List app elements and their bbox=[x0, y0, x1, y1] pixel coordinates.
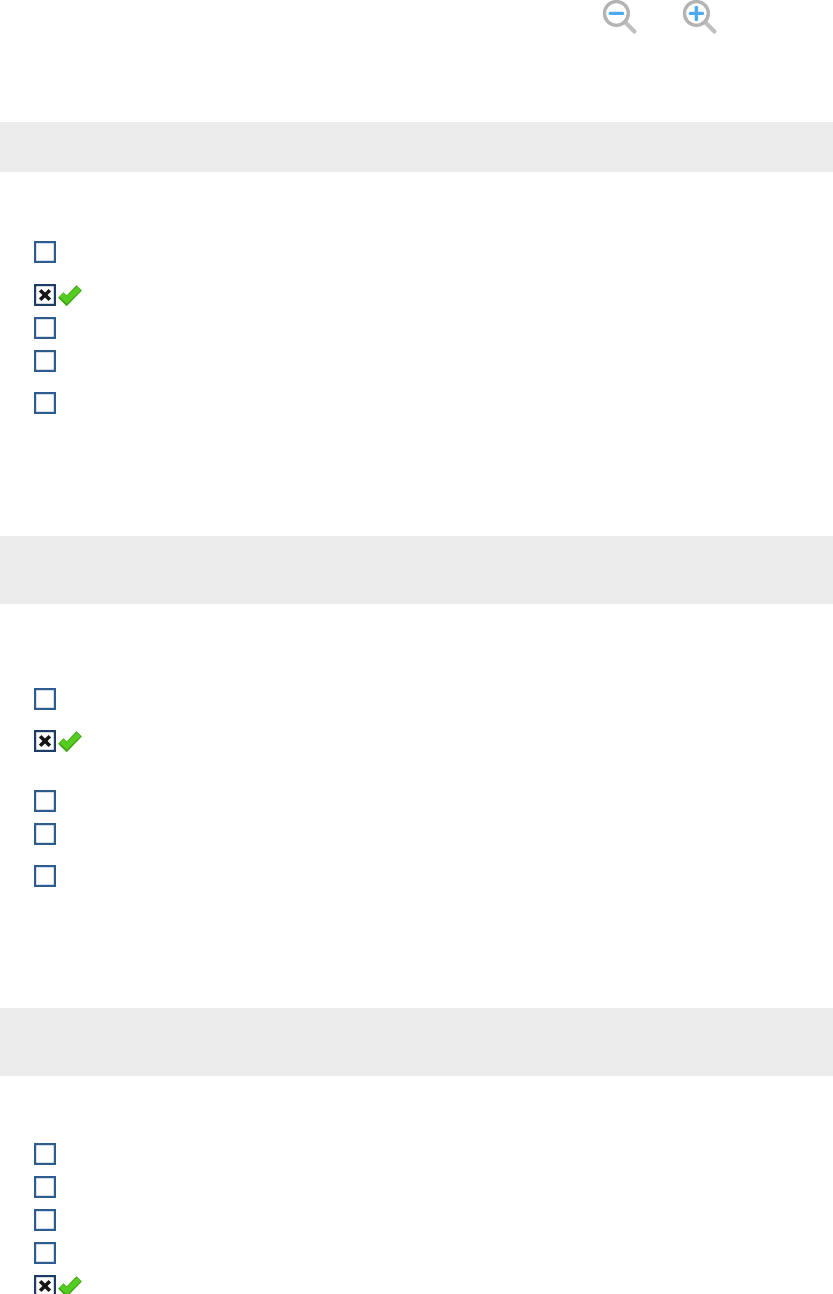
other: Selected bbox=[60, 732, 80, 750]
button[interactable]: Checked option bbox=[34, 730, 56, 752]
button[interactable]: Unchecked option bbox=[34, 865, 56, 887]
button[interactable]: Unchecked option bbox=[34, 1242, 56, 1264]
button[interactable]: Unchecked option bbox=[34, 688, 56, 710]
button[interactable]: Unchecked option bbox=[34, 790, 56, 812]
button[interactable]: Unchecked option bbox=[34, 865, 56, 887]
button[interactable]: Zoom in bbox=[682, 0, 718, 35]
button[interactable]: Unchecked option bbox=[34, 350, 56, 372]
button[interactable]: Unchecked option bbox=[34, 1143, 56, 1165]
button[interactable]: Unchecked option bbox=[34, 790, 56, 812]
button[interactable]: Unchecked option bbox=[34, 317, 56, 339]
button[interactable]: Unchecked option bbox=[34, 1209, 56, 1231]
button[interactable]: Unchecked option bbox=[34, 823, 56, 845]
button[interactable]: Checked option bbox=[34, 284, 56, 306]
button[interactable]: Checked option bbox=[34, 284, 56, 306]
button[interactable]: Checked option bbox=[34, 1275, 56, 1294]
button[interactable]: Unchecked option bbox=[34, 688, 56, 710]
button[interactable]: Unchecked option bbox=[34, 823, 56, 845]
button[interactable]: Unchecked option bbox=[34, 1143, 56, 1165]
button[interactable]: Unchecked option bbox=[34, 317, 56, 339]
button[interactable]: Unchecked option bbox=[34, 392, 56, 414]
button[interactable]: Zoom out bbox=[602, 0, 638, 35]
button[interactable]: Checked option bbox=[34, 1275, 56, 1294]
button[interactable]: Unchecked option bbox=[34, 1176, 56, 1198]
button[interactable]: Unchecked option bbox=[34, 392, 56, 414]
button[interactable]: Checked option bbox=[34, 730, 56, 752]
button[interactable]: Unchecked option bbox=[34, 241, 56, 263]
button[interactable]: Unchecked option bbox=[34, 1242, 56, 1264]
other: Selected bbox=[60, 1277, 80, 1294]
button[interactable]: Unchecked option bbox=[34, 1176, 56, 1198]
button[interactable]: Unchecked option bbox=[34, 1209, 56, 1231]
button[interactable]: Unchecked option bbox=[34, 350, 56, 372]
other: Selected bbox=[60, 286, 80, 304]
button[interactable]: Unchecked option bbox=[34, 241, 56, 263]
